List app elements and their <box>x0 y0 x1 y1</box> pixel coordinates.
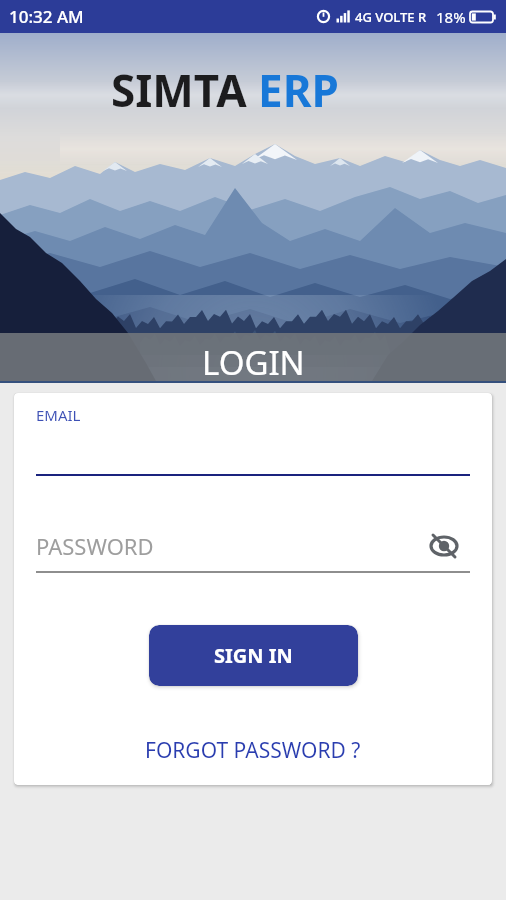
button[interactable] <box>430 532 458 560</box>
staticText: 4G VOLTE R <box>355 8 427 26</box>
staticText: 10:32 AM <box>9 5 84 28</box>
staticText: LOGIN <box>202 340 305 385</box>
button[interactable]: SIGN IN <box>149 625 358 686</box>
staticText: PASSWORD <box>36 531 154 561</box>
staticText: 18% <box>436 7 466 27</box>
staticText: FORGOT PASSWORD ? <box>145 736 361 765</box>
staticText: SIGN IN <box>214 642 293 669</box>
button[interactable]: FORGOT PASSWORD ? <box>145 736 361 765</box>
staticText: SIMTA ERP <box>111 60 339 120</box>
staticText: EMAIL <box>36 405 81 425</box>
